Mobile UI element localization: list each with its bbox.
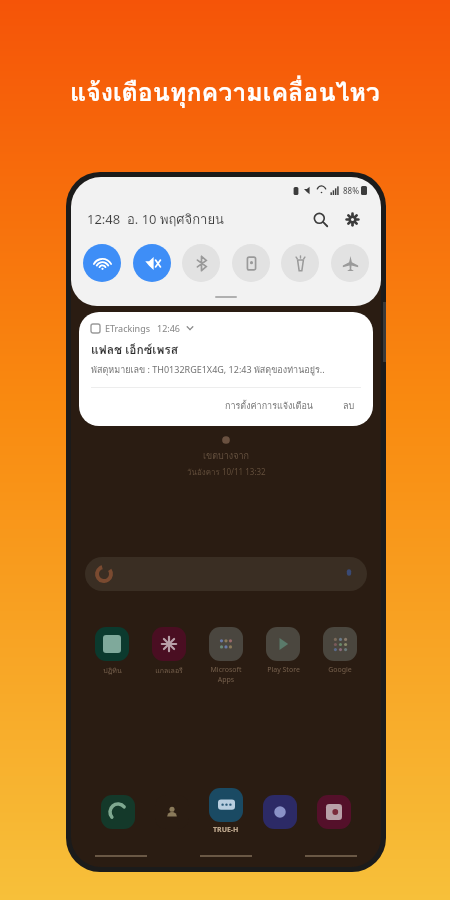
staticText: พัสดุหมายเลข : TH0132RGE1X4G, 12:43 พัสด… (91, 363, 325, 377)
button[interactable]: Flashlight (281, 244, 319, 282)
staticText: Play Store (267, 665, 300, 675)
button[interactable]: App (263, 795, 297, 829)
staticText: เขตบางจาก (203, 449, 250, 463)
button[interactable]: Microsoft Apps (200, 627, 252, 685)
staticText: Google (328, 665, 352, 675)
button[interactable]: Play Store (257, 627, 309, 675)
button[interactable]: Wi-Fi (83, 244, 121, 282)
button[interactable]: แกลเลอรี (143, 627, 195, 676)
staticText: Microsoft Apps (210, 665, 242, 685)
staticText: ETrackings (105, 322, 151, 334)
staticText: แกลเลอรี (155, 665, 183, 676)
staticText: ปฏิทิน (103, 665, 122, 676)
staticText: แจ้งเตือนทุกความเคลื่อนไหว (0, 72, 450, 112)
staticText: 12:46 (157, 322, 181, 334)
staticText: ลบ (343, 399, 355, 413)
button[interactable]: App (101, 795, 135, 829)
staticText: วันอังคาร 10/11 13:32 (187, 466, 266, 479)
button[interactable]: ลบ (337, 396, 361, 416)
button[interactable]: App (317, 795, 351, 829)
staticText: 88% (343, 185, 359, 196)
button[interactable]: App (209, 788, 243, 822)
button[interactable]: Airplane mode (331, 244, 369, 282)
button[interactable]: การตั้งค่าการแจ้งเตือน (219, 396, 319, 416)
button[interactable]: Google search (85, 557, 367, 591)
button[interactable]: Google (314, 627, 366, 675)
button[interactable]: Search (307, 206, 333, 232)
button[interactable]: Settings (339, 206, 365, 232)
button[interactable]: Bluetooth (182, 244, 220, 282)
staticText: 12:48 อ. 10 พฤศจิกายน (87, 209, 224, 230)
button[interactable]: App (155, 795, 189, 829)
staticText: แฟลช เอ็กซ์เพรส (91, 340, 179, 359)
button[interactable]: Auto rotate (232, 244, 270, 282)
button[interactable]: Sound off (133, 244, 171, 282)
staticText: การตั้งค่าการแจ้งเตือน (225, 399, 313, 413)
staticText: TRUE-H (213, 825, 239, 835)
button[interactable]: ETrackings (79, 312, 373, 426)
button[interactable]: ปฏิทิน (86, 627, 138, 676)
